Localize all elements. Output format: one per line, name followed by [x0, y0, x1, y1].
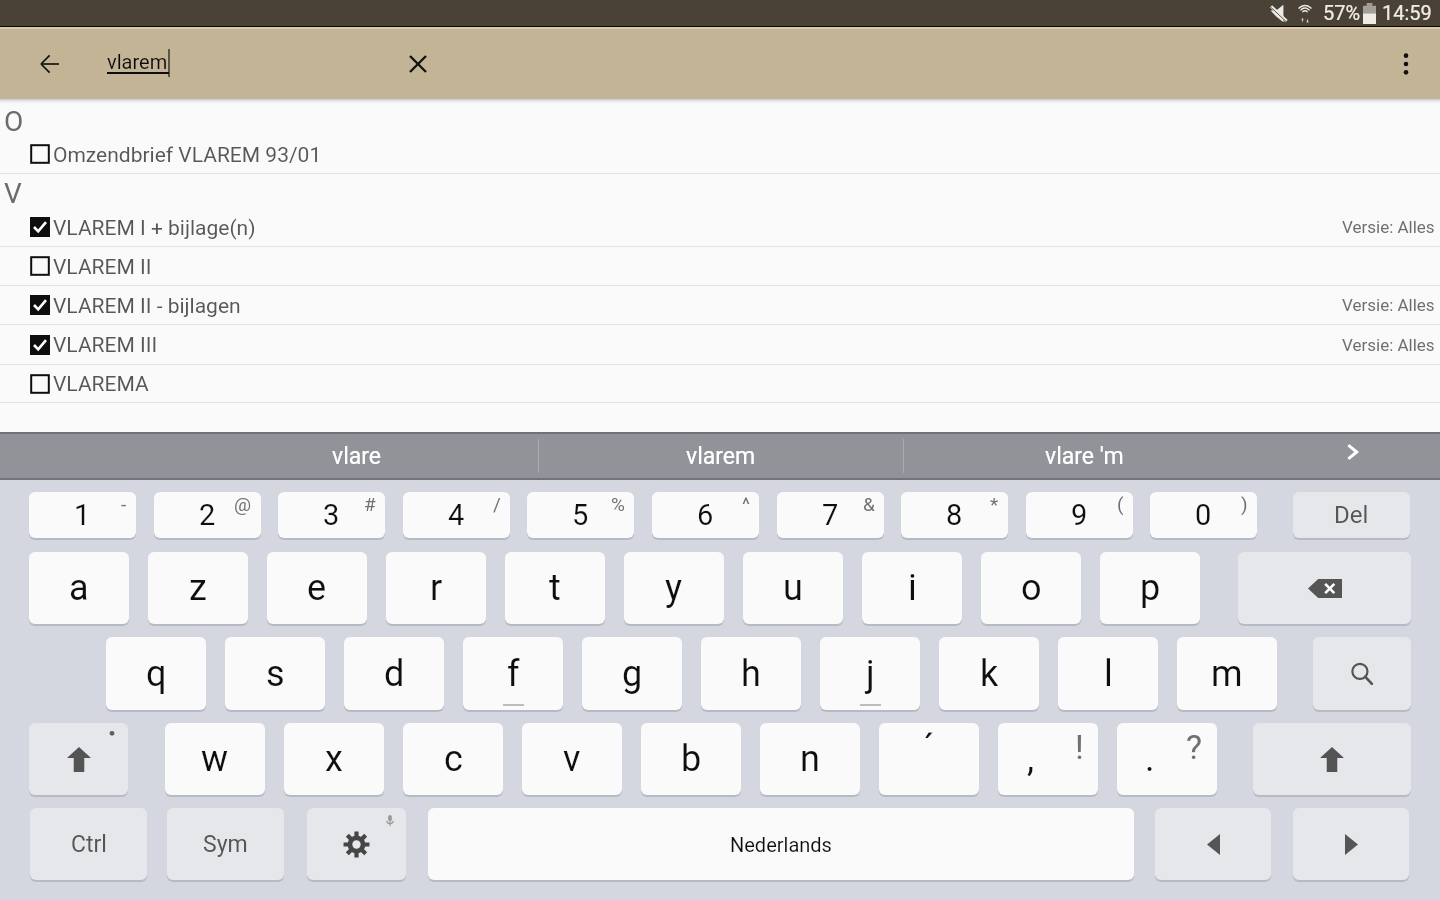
button[interactable]: y: [624, 552, 724, 624]
staticText: Versie: Alles: [1342, 335, 1435, 355]
button[interactable]: More options: [1382, 40, 1430, 88]
staticText: VLAREM III: [53, 333, 158, 358]
staticText: x: [325, 738, 343, 780]
button[interactable]: p: [1100, 552, 1200, 624]
button[interactable]: j: [820, 637, 920, 710]
staticText: Nederlands: [730, 833, 832, 856]
staticText: vlarem: [107, 50, 168, 73]
staticText: Del: [1334, 501, 1369, 529]
button[interactable]: ShiftDot: [29, 723, 128, 795]
button[interactable]: VLAREM II - bijlagen: [0, 286, 1440, 325]
staticText: h: [741, 653, 761, 695]
button[interactable]: VLAREM III: [0, 325, 1440, 365]
button[interactable]: 8: [901, 492, 1008, 538]
button[interactable]: 5: [527, 492, 634, 538]
staticText: VLAREM II - bijlagen: [53, 294, 241, 319]
staticText: d: [384, 653, 405, 695]
button[interactable]: Right: [1293, 808, 1409, 880]
button[interactable]: 3: [278, 492, 385, 538]
button[interactable]: ´: [879, 723, 979, 795]
button[interactable]: g: [582, 637, 682, 710]
staticText: 6: [697, 498, 714, 532]
button[interactable]: VLAREM I + bijlage(n): [0, 208, 1440, 247]
button[interactable]: i: [862, 552, 962, 624]
button[interactable]: t: [505, 552, 605, 624]
staticText: 8: [946, 498, 963, 532]
button[interactable]: Search: [1313, 637, 1411, 710]
staticText: p: [1140, 567, 1161, 609]
button[interactable]: x: [284, 723, 384, 795]
staticText: y: [665, 567, 683, 609]
button[interactable]: c: [403, 723, 503, 795]
button[interactable]: 6: [652, 492, 759, 538]
button[interactable]: a: [29, 552, 129, 624]
button[interactable]: w: [165, 723, 265, 795]
button[interactable]: q: [106, 637, 206, 710]
staticText: *: [990, 493, 999, 515]
button[interactable]: d: [344, 637, 444, 710]
button[interactable]: Left: [1155, 808, 1271, 880]
button[interactable]: Omzendbrief VLAREM 93/01: [0, 135, 1440, 174]
staticText: Versie: Alles: [1342, 295, 1435, 315]
button[interactable]: ,: [998, 723, 1098, 795]
button[interactable]: h: [701, 637, 801, 710]
button[interactable]: n: [760, 723, 860, 795]
staticText: m: [1211, 653, 1243, 695]
button[interactable]: vlare: [176, 432, 538, 480]
button[interactable]: b: [641, 723, 741, 795]
staticText: -: [121, 493, 127, 515]
button[interactable]: s: [225, 637, 325, 710]
button[interactable]: l: [1058, 637, 1158, 710]
button[interactable]: .: [1117, 723, 1217, 795]
staticText: vlarem: [686, 443, 756, 470]
button[interactable]: 2: [154, 492, 261, 538]
staticText: k: [980, 653, 999, 695]
button[interactable]: 9: [1026, 492, 1133, 538]
button[interactable]: k: [939, 637, 1039, 710]
button[interactable]: More suggestions: [1265, 432, 1440, 480]
button[interactable]: z: [148, 552, 248, 624]
button[interactable]: 0: [1150, 492, 1257, 538]
button[interactable]: Clear query: [394, 40, 442, 88]
button[interactable]: r: [386, 552, 486, 624]
button[interactable]: m: [1177, 637, 1277, 710]
button[interactable]: vlare 'm: [904, 432, 1265, 480]
staticText: o: [1021, 567, 1042, 609]
button[interactable]: VLAREM II: [0, 247, 1440, 286]
button[interactable]: e: [267, 552, 367, 624]
button[interactable]: Nederlands: [428, 808, 1134, 880]
staticText: n: [800, 738, 820, 780]
button[interactable]: Sym: [167, 808, 284, 880]
button[interactable]: f: [463, 637, 563, 710]
staticText: 9: [1071, 498, 1088, 532]
staticText: 7: [822, 498, 839, 532]
staticText: j: [866, 653, 875, 695]
staticText: Sym: [203, 831, 248, 858]
staticText: VLAREMA: [53, 372, 149, 397]
button[interactable]: u: [743, 552, 843, 624]
staticText: %: [611, 493, 625, 515]
button[interactable]: 7: [777, 492, 884, 538]
button[interactable]: v: [522, 723, 622, 795]
button[interactable]: Back: [25, 40, 73, 88]
staticText: w: [201, 738, 229, 780]
staticText: ^: [742, 493, 750, 515]
staticText: q: [146, 653, 167, 695]
staticText: !: [1075, 727, 1084, 767]
staticText: 5: [572, 498, 589, 532]
button[interactable]: Settings: [307, 808, 406, 880]
button[interactable]: 1: [29, 492, 136, 538]
button[interactable]: Ctrl: [30, 808, 147, 880]
staticText: 14:59: [1382, 1, 1432, 24]
staticText: @: [234, 493, 252, 515]
button[interactable]: VLAREMA: [0, 365, 1440, 403]
staticText: l: [1104, 653, 1113, 695]
button[interactable]: 4: [403, 492, 510, 538]
button[interactable]: vlarem: [539, 432, 903, 480]
button[interactable]: o: [981, 552, 1081, 624]
staticText: V: [4, 177, 22, 210]
button[interactable]: Shift: [1253, 723, 1411, 795]
staticText: f: [507, 653, 520, 695]
button[interactable]: Del: [1293, 492, 1410, 538]
button[interactable]: Backspace: [1238, 552, 1411, 624]
